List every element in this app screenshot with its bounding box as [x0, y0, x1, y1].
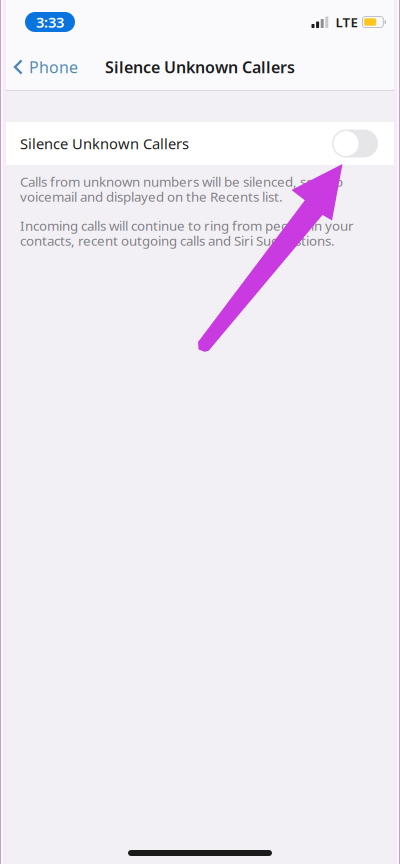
staticText: Calls from unknown numbers will be silen…: [20, 173, 343, 190]
staticText: contacts, recent outgoing calls and Siri…: [20, 232, 335, 249]
staticText: Incoming calls will continue to ring fro…: [20, 217, 354, 234]
staticText: Phone: [29, 56, 78, 78]
staticText: Silence Unknown Callers: [20, 134, 189, 153]
button[interactable]: Silence Unknown Callers: [0, 122, 400, 165]
staticText: voicemail and displayed on the Recents l…: [20, 188, 283, 205]
staticText: 3:33: [36, 12, 64, 32]
staticText: LTE: [335, 13, 357, 31]
button[interactable]: Phone: [0, 44, 88, 90]
staticText: Silence Unknown Callers: [105, 56, 295, 78]
